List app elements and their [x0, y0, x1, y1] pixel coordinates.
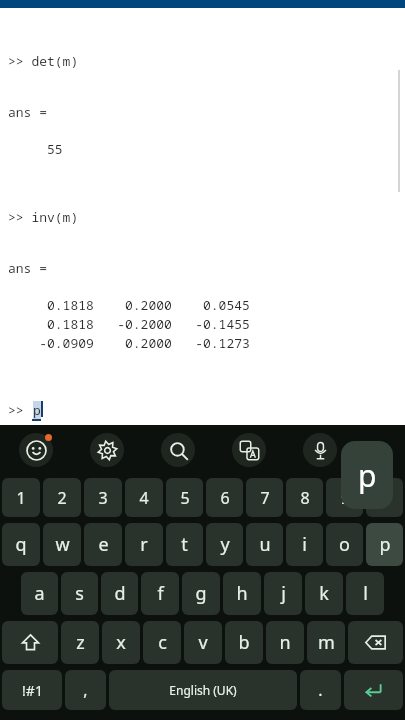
staticText: 0.1818 0.2000 0.0545	[8, 296, 250, 314]
button[interactable]: d	[101, 572, 138, 615]
button[interactable]: 3	[84, 478, 122, 517]
button[interactable]: Emoji	[19, 433, 53, 467]
button[interactable]: n	[266, 621, 304, 664]
staticText: !#1	[22, 681, 43, 700]
button[interactable]: m	[307, 621, 345, 664]
staticText: p	[358, 455, 377, 496]
staticText: ans =	[8, 103, 48, 121]
staticText: b	[238, 630, 250, 655]
button[interactable]: !#1	[2, 670, 62, 710]
staticText: >>	[8, 401, 32, 419]
staticText: p	[33, 401, 41, 419]
staticText: l	[363, 581, 368, 606]
staticText: 8	[300, 487, 310, 509]
button[interactable]: a	[21, 572, 58, 615]
staticText: 0	[380, 487, 390, 509]
button[interactable]: ,	[65, 670, 106, 710]
staticText: c	[158, 630, 167, 655]
button[interactable]: z	[61, 621, 99, 664]
button[interactable]: 2	[43, 478, 81, 517]
button[interactable]: l	[346, 572, 384, 615]
staticText: f	[157, 581, 164, 606]
button[interactable]: English (UK)	[109, 670, 297, 710]
button[interactable]: Enter	[344, 670, 403, 710]
staticText: d	[114, 581, 126, 606]
staticText: 3	[98, 487, 108, 509]
staticText: 5	[180, 487, 190, 509]
staticText: .	[318, 679, 323, 701]
staticText: 4	[139, 487, 149, 509]
button[interactable]: o	[326, 523, 363, 566]
staticText: k	[319, 581, 329, 606]
staticText: 55	[8, 140, 63, 158]
staticText: g	[195, 581, 207, 606]
button[interactable]: Settings	[90, 433, 124, 467]
staticText: o	[339, 532, 350, 557]
staticText: -0.0909 0.2000 -0.1273	[8, 334, 250, 352]
button[interactable]: s	[61, 572, 98, 615]
button[interactable]: i	[286, 523, 323, 566]
staticText: ,	[83, 679, 88, 701]
button[interactable]: 9	[326, 478, 363, 517]
button[interactable]: Translate	[232, 433, 266, 467]
staticText: English (UK)	[169, 682, 237, 698]
button[interactable]: 6	[206, 478, 243, 517]
staticText: 6	[220, 487, 230, 509]
staticText: e	[98, 532, 109, 557]
button[interactable]: Shift	[2, 621, 58, 664]
button[interactable]: h	[223, 572, 261, 615]
staticText: p	[379, 532, 391, 557]
button[interactable]: Search	[161, 433, 195, 467]
button[interactable]: 4	[125, 478, 163, 517]
button[interactable]: Backspace	[348, 621, 403, 664]
button[interactable]: c	[143, 621, 181, 664]
button[interactable]: j	[264, 572, 302, 615]
button[interactable]: q	[2, 523, 40, 566]
staticText: i	[302, 532, 307, 557]
staticText: h	[236, 581, 248, 606]
button[interactable]: f	[141, 572, 179, 615]
staticText: x	[116, 630, 126, 655]
staticText: 2	[57, 487, 67, 509]
staticText: >> inv(m)	[8, 208, 79, 226]
staticText: v	[198, 630, 208, 655]
button[interactable]: e	[84, 523, 122, 566]
button[interactable]: v	[184, 621, 222, 664]
staticText: r	[140, 532, 148, 557]
button[interactable]: k	[305, 572, 343, 615]
button[interactable]: p	[366, 523, 403, 566]
staticText: 0.1818 -0.2000 -0.1455	[8, 315, 250, 333]
staticText: t	[181, 532, 188, 557]
staticText: 1	[16, 487, 26, 509]
button[interactable]: .	[300, 670, 341, 710]
staticText: >> det(m)	[8, 52, 79, 70]
button[interactable]: 8	[286, 478, 323, 517]
button[interactable]: u	[246, 523, 283, 566]
staticText: 7	[260, 487, 270, 509]
staticText: z	[76, 630, 85, 655]
button[interactable]: t	[166, 523, 203, 566]
staticText: ans =	[8, 259, 48, 277]
button[interactable]: 7	[246, 478, 283, 517]
button[interactable]: b	[225, 621, 263, 664]
button[interactable]: 5	[166, 478, 203, 517]
staticText: n	[279, 630, 291, 655]
button[interactable]: 0	[366, 478, 403, 517]
button[interactable]: x	[102, 621, 140, 664]
button[interactable]: r	[125, 523, 163, 566]
staticText: j	[281, 581, 286, 606]
button[interactable]: Voice input	[303, 433, 337, 467]
button[interactable]: y	[206, 523, 243, 566]
staticText: u	[259, 532, 271, 557]
staticText: m	[318, 630, 335, 655]
staticText: a	[34, 581, 45, 606]
staticText: w	[55, 532, 70, 557]
button[interactable]: w	[43, 523, 81, 566]
staticText: q	[15, 532, 27, 557]
button[interactable]: 1	[2, 478, 40, 517]
staticText: 9	[340, 487, 350, 509]
staticText: s	[75, 581, 84, 606]
button[interactable]: g	[182, 572, 220, 615]
staticText: y	[220, 532, 230, 557]
